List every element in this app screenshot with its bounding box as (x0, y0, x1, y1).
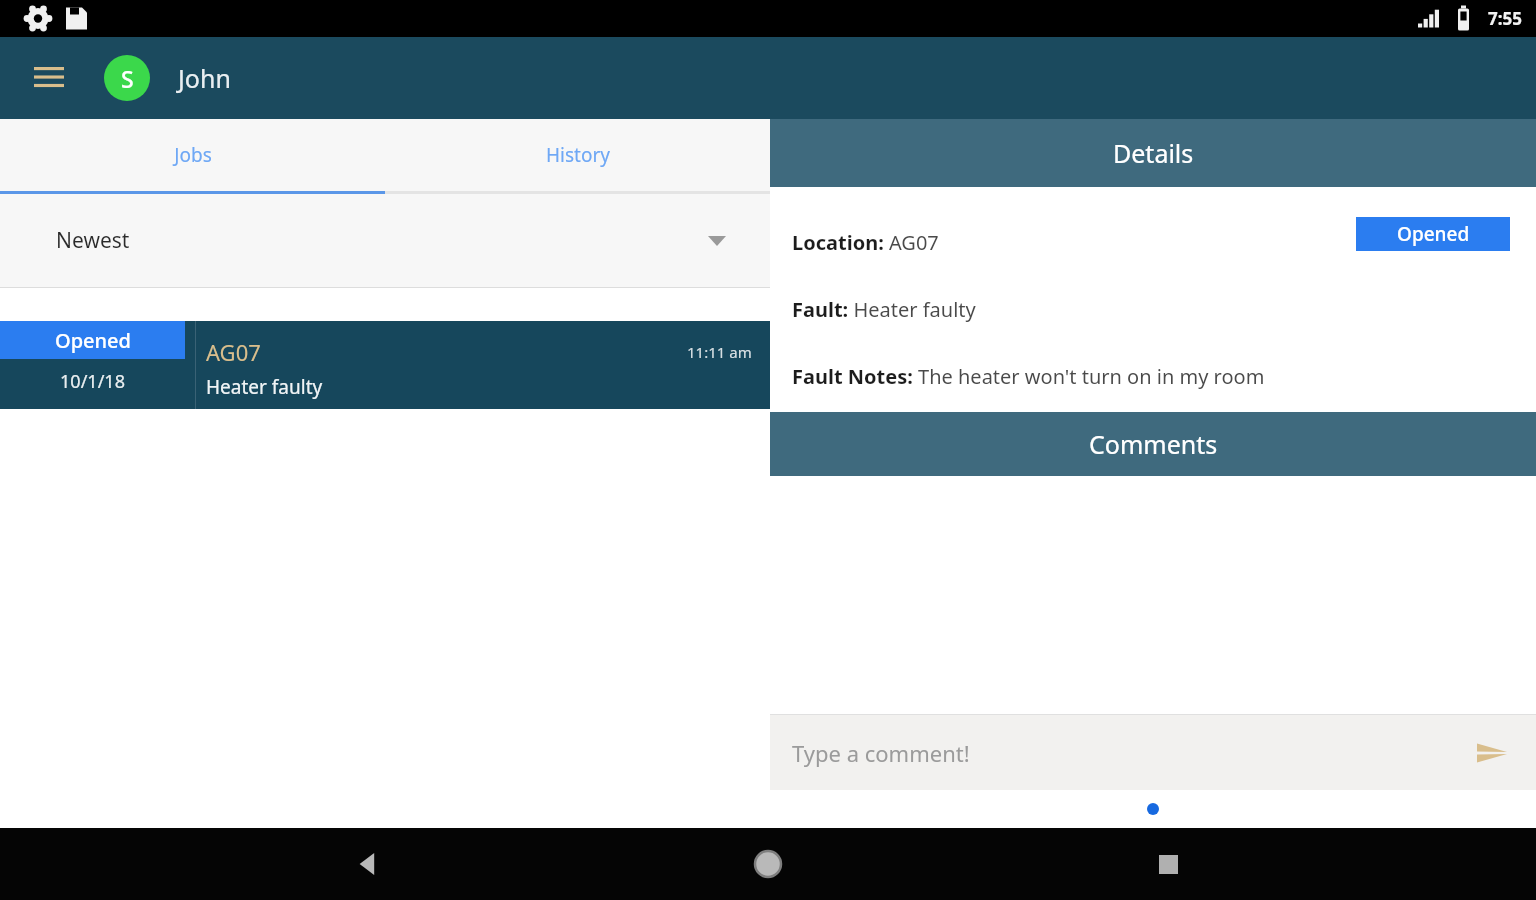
staticText: Comments (1089, 427, 1218, 461)
staticText: 10/1/18 (0, 369, 185, 394)
button[interactable]: Opened (1356, 217, 1510, 251)
staticText: S (121, 63, 134, 94)
button[interactable]: History (385, 119, 770, 191)
button[interactable]: Opened (0, 321, 770, 409)
button[interactable]: Type a comment! (770, 715, 1536, 790)
button[interactable]: Send comment (1468, 729, 1516, 777)
staticText: Newest (56, 226, 130, 255)
button[interactable]: Open navigation menu (22, 51, 76, 105)
staticText: Location: AG07 (792, 229, 939, 256)
staticText: AG07 (206, 337, 261, 367)
staticText: Fault: Heater faulty (792, 296, 976, 323)
button[interactable]: Home (736, 832, 800, 896)
staticText: 11:11 am (687, 342, 752, 362)
button[interactable]: Newest (0, 194, 770, 287)
staticText: Type a comment! (792, 738, 970, 768)
button[interactable]: Jobs (0, 119, 385, 191)
staticText: 7:55 (1488, 7, 1522, 30)
button[interactable]: Recent apps (1136, 832, 1200, 896)
staticText: Fault Notes: The heater won't turn on in… (792, 363, 1265, 390)
staticText: John (178, 61, 231, 95)
staticText: Opened (1397, 221, 1470, 247)
staticText: Opened (55, 327, 131, 354)
button[interactable]: Back (336, 832, 400, 896)
staticText: History (546, 142, 610, 168)
button[interactable]: S (104, 55, 150, 101)
staticText: Details (1113, 136, 1194, 170)
staticText: Jobs (174, 142, 212, 168)
staticText: Heater faulty (206, 374, 323, 400)
